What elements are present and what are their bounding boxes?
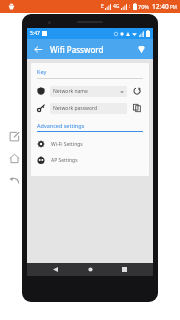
button[interactable]: Recents [118, 263, 131, 276]
button[interactable]: Premium [134, 42, 148, 56]
button[interactable]: Undo [6, 172, 22, 188]
staticText: E [101, 3, 104, 10]
button[interactable]: Home [84, 263, 97, 276]
staticText: AP Settings [51, 157, 78, 164]
staticText: Key [37, 68, 47, 75]
button[interactable]: Edit [6, 128, 22, 144]
staticText: 12:40 [152, 2, 169, 11]
button[interactable]: Back [49, 263, 62, 276]
button[interactable]: Refresh [131, 85, 143, 97]
button[interactable]: Network name [50, 86, 127, 97]
staticText: 4G [113, 3, 120, 10]
staticText: Wifi Password [50, 44, 104, 55]
staticText: PM [170, 4, 177, 10]
staticText: 70% [138, 3, 149, 10]
button[interactable]: Home [6, 150, 22, 166]
staticText: Advanced settings [37, 122, 85, 129]
button[interactable]: Wi-Fi Settings [37, 139, 143, 149]
staticText: 5:47 [30, 30, 40, 37]
button[interactable]: Back [32, 43, 45, 56]
staticText: Network name [53, 88, 88, 95]
button[interactable]: Copy [131, 102, 143, 114]
button[interactable]: Network password [50, 103, 127, 114]
staticText: Wi-Fi Settings [51, 141, 83, 148]
button[interactable]: AP Settings [37, 155, 143, 165]
staticText: : [129, 3, 131, 10]
staticText: Network password [53, 105, 98, 112]
